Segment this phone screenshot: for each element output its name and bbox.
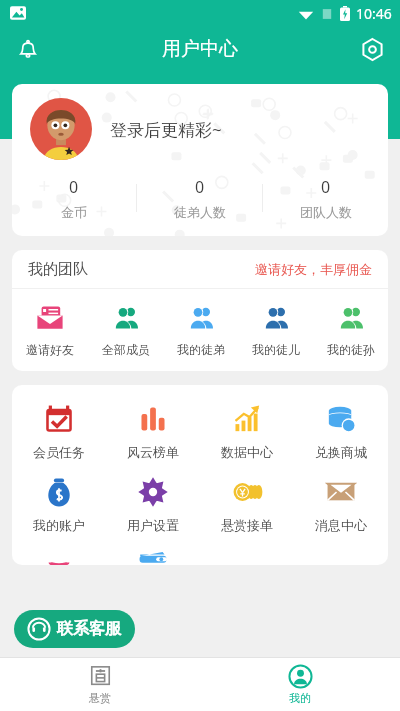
button[interactable]: 全部成员 (88, 303, 163, 357)
staticText: 我的账户 (33, 517, 85, 533)
staticText: 用户中心 (162, 37, 238, 61)
staticText: 登录后更精彩~ (110, 118, 222, 141)
staticText: 我的徒孙 (327, 342, 375, 357)
button[interactable]: 我的徒孙 (313, 303, 388, 357)
button[interactable]: 邀请好友 (12, 303, 88, 357)
button[interactable]: 我的徒儿 (238, 303, 313, 357)
staticText: 风云榜单 (127, 444, 179, 460)
staticText: 0 (195, 176, 205, 198)
button[interactable] (106, 549, 200, 565)
staticText: 团队人数 (300, 204, 352, 220)
button[interactable]: 兑换商城 (294, 403, 388, 460)
staticText: 0 (321, 176, 331, 198)
button[interactable]: 我的账户 (12, 476, 106, 533)
button[interactable]: Settings (352, 29, 392, 69)
button[interactable]: 数据中心 (200, 403, 294, 460)
button[interactable]: 悬赏 (0, 658, 200, 711)
button[interactable]: Notifications (8, 29, 48, 69)
button[interactable]: 消息中心 (294, 476, 388, 533)
button[interactable]: 0 (137, 176, 262, 220)
staticText: 10:46 (356, 4, 392, 23)
button[interactable]: 用户设置 (106, 476, 200, 533)
staticText: 数据中心 (221, 444, 273, 460)
staticText: 用户设置 (127, 517, 179, 533)
staticText: 兑换商城 (315, 444, 367, 460)
staticText: 我的 (289, 691, 311, 705)
staticText: 会员任务 (33, 444, 85, 460)
button[interactable]: 登录后更精彩~ (12, 84, 388, 236)
staticText: 徒弟人数 (174, 204, 226, 220)
staticText: 联系客服 (57, 619, 121, 639)
staticText: 我的团队 (28, 260, 88, 279)
button[interactable]: 我的徒弟 (163, 303, 238, 357)
button[interactable]: 悬赏接单 (200, 476, 294, 533)
staticText: 邀请好友 (26, 342, 74, 357)
button[interactable] (12, 549, 106, 565)
staticText: 全部成员 (102, 342, 150, 357)
button[interactable]: 我的 (200, 658, 400, 711)
button[interactable]: 0 (263, 176, 388, 220)
staticText: 0 (69, 176, 79, 198)
staticText: 我的徒儿 (252, 342, 300, 357)
staticText: 我的徒弟 (177, 342, 225, 357)
button[interactable]: 风云榜单 (106, 403, 200, 460)
button[interactable]: 0 (12, 176, 136, 220)
staticText: 悬赏 (89, 691, 111, 705)
staticText: 悬赏接单 (221, 517, 273, 533)
staticText: 金币 (61, 204, 87, 220)
button[interactable]: 会员任务 (12, 403, 106, 460)
button[interactable]: 联系客服 (14, 610, 135, 648)
button[interactable]: 邀请好友，丰厚佣金 (255, 261, 372, 277)
staticText: 邀请好友，丰厚佣金 (255, 261, 372, 277)
staticText: 消息中心 (315, 517, 367, 533)
